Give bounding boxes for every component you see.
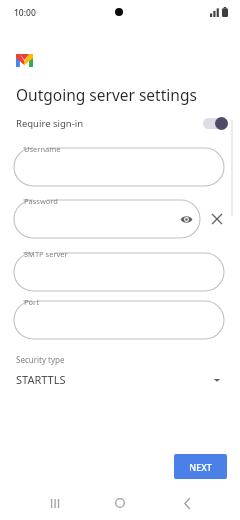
button[interactable]: SMTP server [14,253,224,291]
button[interactable]: Security type [0,354,240,387]
staticText: Username [24,144,61,154]
staticText: 10:00 [14,7,36,19]
button[interactable]: NEXT [174,454,227,479]
button[interactable]: Recents [42,486,68,520]
button[interactable]: Back [174,486,200,520]
button[interactable]: Home [107,486,133,520]
staticText: Port [24,297,39,307]
button[interactable]: Show password [178,211,194,227]
other: Gmail [16,54,33,67]
button[interactable]: Require sign-in toggle [203,117,228,130]
staticText: STARTTLS [16,372,66,387]
staticText: Require sign-in [16,117,84,130]
button[interactable]: Password [14,200,200,238]
button[interactable]: Require sign-in [0,112,240,134]
staticText: Outgoing server settings [16,84,197,105]
button[interactable]: Clear password [209,211,225,227]
button[interactable]: Port [14,301,224,339]
staticText: NEXT [189,461,212,473]
staticText: Password [24,196,58,206]
button[interactable]: Username [14,148,224,186]
staticText: SMTP server [24,249,68,259]
staticText: Security type [16,354,65,365]
